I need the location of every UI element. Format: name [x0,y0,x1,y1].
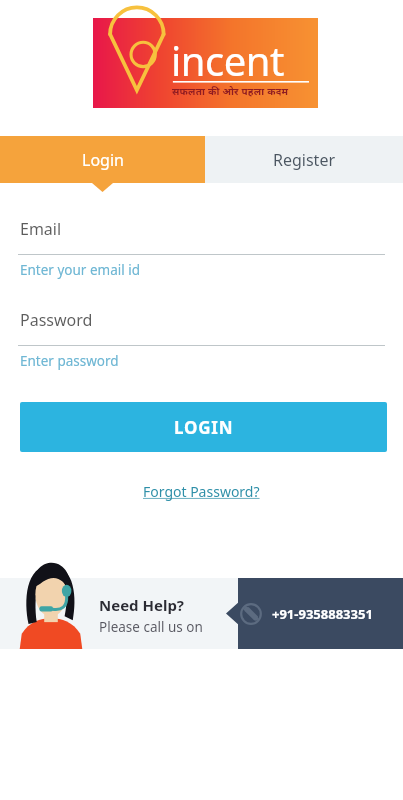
staticText: Forgot Password? [143,482,260,501]
button[interactable]: Call support +91-9358883351 [240,578,403,649]
staticText: Login [82,149,124,171]
staticText: +91-9358883351 [272,605,373,623]
staticText: Enter password [20,352,119,370]
button[interactable]: Login [0,136,205,183]
staticText: LOGIN [174,416,234,439]
staticText: Need Help? [99,595,185,615]
button[interactable]: Need Help? [99,595,203,636]
staticText: Register [273,149,336,171]
button[interactable] [0,578,403,649]
staticText: incent [171,33,284,87]
staticText: Password [20,309,93,331]
button[interactable]: Password [18,309,385,370]
button[interactable]: Forgot Password? [137,478,266,505]
staticText: Enter your email id [20,261,140,279]
button[interactable]: Email [18,218,385,279]
button[interactable]: Register [205,136,403,183]
staticText: Email [20,218,62,240]
button[interactable]: LOGIN [20,402,387,452]
staticText: Please call us on [99,618,203,636]
staticText: सफलता की ओर पहला कदम [172,84,289,98]
